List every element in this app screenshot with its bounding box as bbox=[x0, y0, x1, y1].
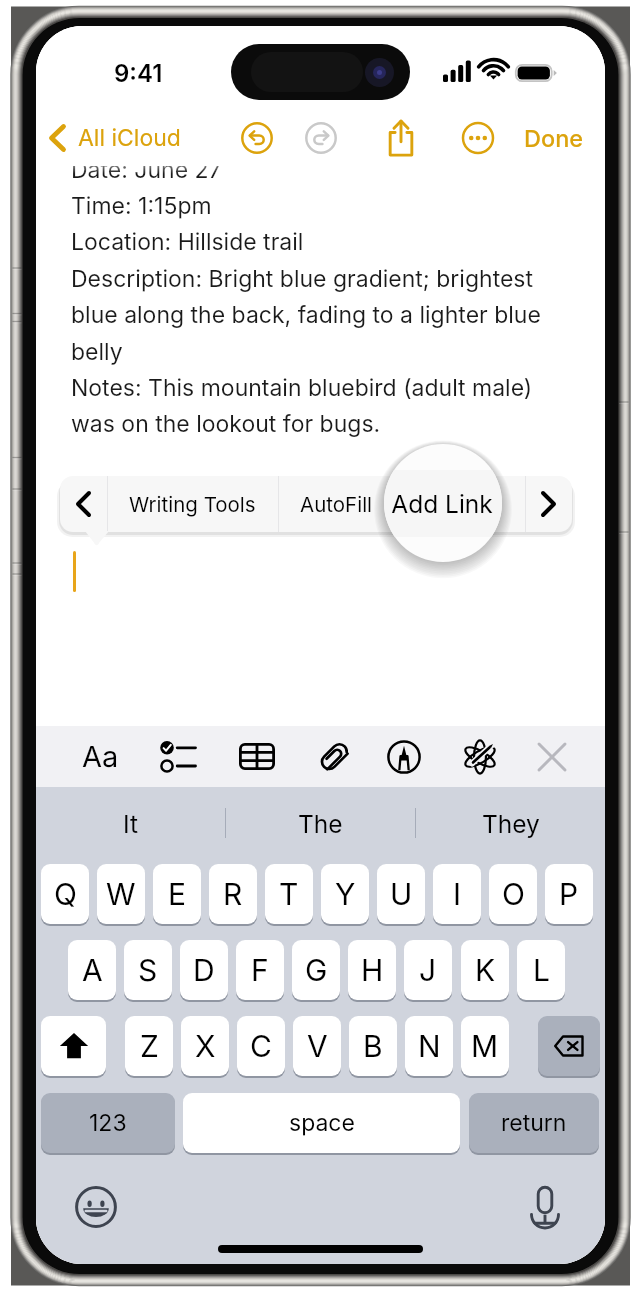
staticText: belly bbox=[71, 338, 123, 366]
staticText: What a beautiful day bbox=[71, 31, 344, 65]
staticText: They bbox=[482, 809, 540, 839]
staticText: T bbox=[279, 876, 299, 912]
button[interactable]: G bbox=[292, 940, 340, 1000]
button[interactable]: Aa bbox=[74, 726, 126, 787]
staticText: V bbox=[307, 1028, 328, 1064]
button[interactable]: Checklist bbox=[152, 726, 204, 787]
button[interactable]: Q bbox=[41, 864, 89, 924]
button[interactable]: F bbox=[236, 940, 284, 1000]
button[interactable]: T bbox=[265, 864, 313, 924]
button[interactable]: Close keyboard bbox=[526, 726, 578, 787]
button[interactable]: N bbox=[405, 1016, 453, 1076]
staticText: D bbox=[193, 952, 215, 988]
button[interactable]: More bbox=[456, 110, 500, 166]
button[interactable]: W bbox=[97, 864, 145, 924]
button[interactable]: Next bbox=[525, 476, 572, 532]
staticText: C bbox=[250, 1028, 272, 1064]
button[interactable]: J bbox=[404, 940, 452, 1000]
button[interactable]: D bbox=[180, 940, 228, 1000]
button[interactable]: Markup bbox=[378, 726, 430, 787]
button[interactable]: Emoji keyboard bbox=[75, 1186, 117, 1228]
button[interactable]: return bbox=[469, 1093, 599, 1153]
staticText: The bbox=[298, 809, 343, 839]
button[interactable]: The bbox=[226, 787, 415, 859]
button[interactable]: Redo bbox=[299, 110, 343, 166]
staticText: Time: 1:15pm bbox=[71, 192, 212, 220]
button[interactable]: Writing Tools bbox=[107, 476, 278, 532]
button[interactable]: All iCloud bbox=[49, 110, 181, 166]
button[interactable]: X bbox=[181, 1016, 229, 1076]
staticText: W bbox=[106, 876, 136, 912]
button[interactable]: R bbox=[209, 864, 257, 924]
button[interactable]: M bbox=[461, 1016, 509, 1076]
staticText: AutoFill bbox=[300, 492, 373, 517]
button[interactable]: S bbox=[124, 940, 172, 1000]
staticText: Y bbox=[335, 876, 356, 912]
staticText: Mountain bluebird bbox=[71, 104, 285, 134]
button[interactable]: O bbox=[489, 864, 537, 924]
button[interactable]: Dictate bbox=[528, 1185, 562, 1225]
staticText: Aa bbox=[82, 739, 119, 774]
staticText: space bbox=[289, 1109, 355, 1137]
staticText: Writing Tools bbox=[129, 492, 256, 517]
button[interactable]: K bbox=[461, 940, 509, 1000]
button[interactable]: Image Playground bbox=[454, 726, 506, 787]
staticText: M bbox=[471, 1028, 499, 1064]
button[interactable]: U bbox=[377, 864, 425, 924]
staticText: 9:41 bbox=[114, 59, 163, 88]
button[interactable]: E bbox=[153, 864, 201, 924]
staticText: N bbox=[418, 1028, 441, 1064]
button[interactable]: It bbox=[36, 787, 225, 859]
staticText: Add Link bbox=[398, 492, 483, 517]
button[interactable]: space bbox=[183, 1093, 460, 1153]
staticText: H bbox=[361, 952, 384, 988]
button[interactable]: Attach file bbox=[308, 726, 360, 787]
button[interactable]: V bbox=[293, 1016, 341, 1076]
button[interactable]: Backspace bbox=[538, 1016, 600, 1076]
button[interactable]: P bbox=[545, 864, 593, 924]
staticText: was on the lookout for bugs. bbox=[71, 410, 381, 438]
staticText: return bbox=[501, 1109, 567, 1137]
staticText: blue along the back, fading to a lighter… bbox=[71, 301, 541, 329]
staticText: U bbox=[390, 876, 413, 912]
button[interactable]: C bbox=[237, 1016, 285, 1076]
staticText: Date: June 27 bbox=[71, 156, 222, 184]
button[interactable]: They bbox=[416, 787, 605, 859]
staticText: 123 bbox=[89, 1109, 127, 1137]
button[interactable]: 123 bbox=[41, 1093, 175, 1153]
staticText: J bbox=[419, 952, 437, 988]
staticText: L bbox=[533, 952, 550, 988]
button[interactable]: Previous bbox=[60, 476, 107, 532]
staticText: I bbox=[453, 876, 462, 912]
staticText: It bbox=[123, 809, 138, 839]
staticText: F bbox=[251, 952, 269, 988]
button[interactable]: Done bbox=[519, 110, 589, 166]
staticText: A bbox=[82, 952, 103, 988]
staticText: B bbox=[363, 1028, 383, 1064]
button[interactable]: Undo bbox=[235, 110, 279, 166]
button[interactable]: Shift bbox=[41, 1016, 106, 1076]
staticText: K bbox=[475, 952, 496, 988]
staticText: P bbox=[559, 876, 579, 912]
staticText: Location: Hillside trail bbox=[71, 228, 304, 256]
staticText: Done bbox=[524, 124, 584, 152]
button[interactable]: Table bbox=[231, 726, 283, 787]
button[interactable]: Add Link bbox=[395, 476, 486, 532]
staticText: O bbox=[502, 876, 525, 912]
button[interactable]: B bbox=[349, 1016, 397, 1076]
staticText: All iCloud bbox=[78, 124, 181, 152]
staticText: S bbox=[138, 952, 158, 988]
button[interactable]: H bbox=[348, 940, 396, 1000]
staticText: Z bbox=[140, 1028, 159, 1064]
staticText: Q bbox=[54, 876, 77, 912]
button[interactable]: I bbox=[433, 864, 481, 924]
button[interactable]: Share bbox=[379, 110, 423, 166]
button[interactable]: AutoFill bbox=[278, 476, 395, 532]
button[interactable]: L bbox=[517, 940, 565, 1000]
staticText: Notes: This mountain bluebird (adult mal… bbox=[71, 374, 533, 402]
button[interactable] bbox=[486, 476, 525, 532]
staticText: X bbox=[195, 1028, 216, 1064]
button[interactable]: Z bbox=[125, 1016, 173, 1076]
button[interactable]: Y bbox=[321, 864, 369, 924]
button[interactable]: A bbox=[68, 940, 116, 1000]
